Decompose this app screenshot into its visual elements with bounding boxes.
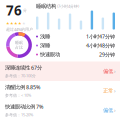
staticText: 参考值：< 10% xyxy=(5,93,31,98)
staticText: 分 xyxy=(23,8,27,13)
button[interactable]: 清醒比例 8.85% xyxy=(0,81,120,100)
staticText: › xyxy=(114,68,116,75)
button[interactable]: 快速眼动比例 7% xyxy=(0,100,120,120)
staticText: 偏低 xyxy=(103,68,113,75)
staticText: 睡眠结构 xyxy=(36,3,56,10)
staticText: › xyxy=(114,107,116,114)
staticText: 深睡连续性 67分 xyxy=(5,64,42,71)
staticText: ★ xyxy=(22,21,26,26)
staticText: ★★★★ xyxy=(6,21,22,26)
staticText: 1小时47分钟 xyxy=(86,33,115,40)
staticText: 占比 xyxy=(15,45,23,50)
staticText: 睡眠 xyxy=(15,40,23,45)
button[interactable]: 深睡连续性 67分 xyxy=(0,61,120,81)
staticText: 浅睡 xyxy=(40,33,50,40)
staticText: 快速眼动比例 7% xyxy=(5,103,43,110)
staticText: 偏低 xyxy=(103,107,113,114)
staticText: 4小时48分钟 xyxy=(86,42,115,49)
staticText: 参考值：15-20% xyxy=(5,112,33,117)
staticText: 参考值：70-100分 xyxy=(5,73,36,78)
staticText: 29分钟 xyxy=(99,51,115,58)
staticText: 快速眼动 xyxy=(40,51,60,58)
staticText: 76 xyxy=(6,1,22,19)
staticText: 清醒比例 8.85% xyxy=(5,84,40,91)
staticText: 正常 xyxy=(103,87,113,94)
staticText: › xyxy=(114,87,116,94)
staticText: (7小时4分钟) xyxy=(56,4,79,9)
staticText: 超过44%的用户 xyxy=(6,27,33,32)
staticText: 深睡 xyxy=(40,42,50,49)
